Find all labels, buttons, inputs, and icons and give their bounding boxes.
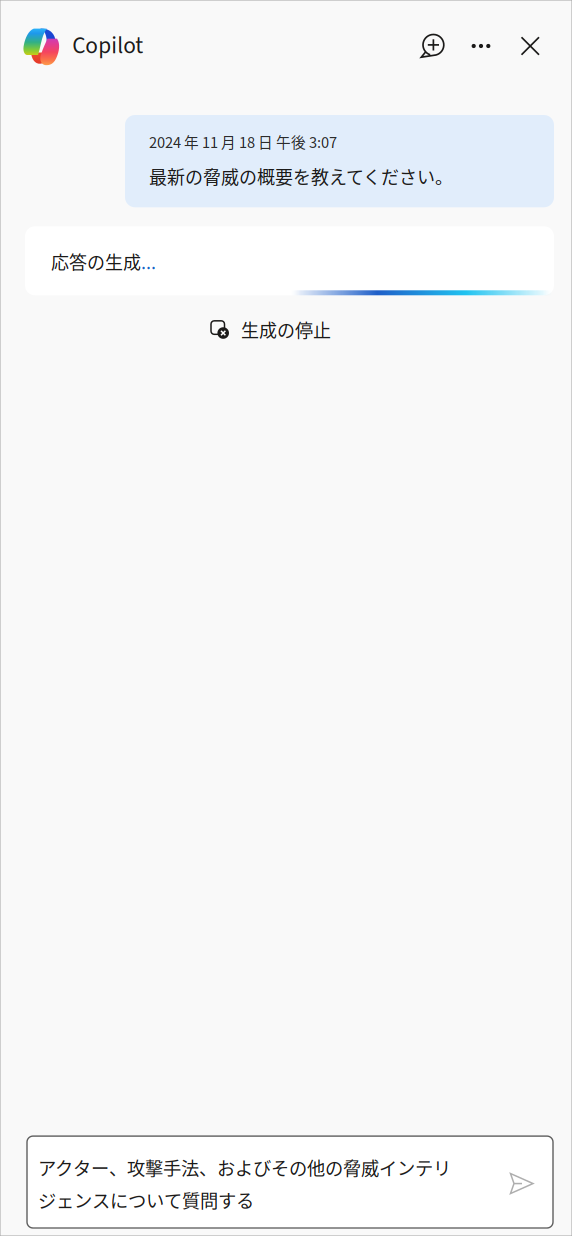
- staticText: 生成の停止: [241, 316, 331, 342]
- button[interactable]: Send: [509, 1172, 553, 1194]
- staticText: 最新の脅威の概要を教えてください。: [149, 163, 453, 189]
- staticText: 2024 年 11 月 18 日 午後 3:07: [149, 131, 337, 152]
- button[interactable]: Close: [504, 24, 556, 68]
- button[interactable]: 生成の停止: [200, 311, 341, 347]
- staticText: アクター、攻撃手法、およびその他の脅威インテリジェンスについて質問する: [38, 1154, 451, 1213]
- staticText: 応答の生成: [51, 248, 141, 274]
- button[interactable]: More options: [457, 22, 504, 70]
- button[interactable]: New chat: [407, 22, 457, 70]
- staticText: Copilot: [72, 29, 143, 63]
- staticText: ...: [141, 248, 156, 274]
